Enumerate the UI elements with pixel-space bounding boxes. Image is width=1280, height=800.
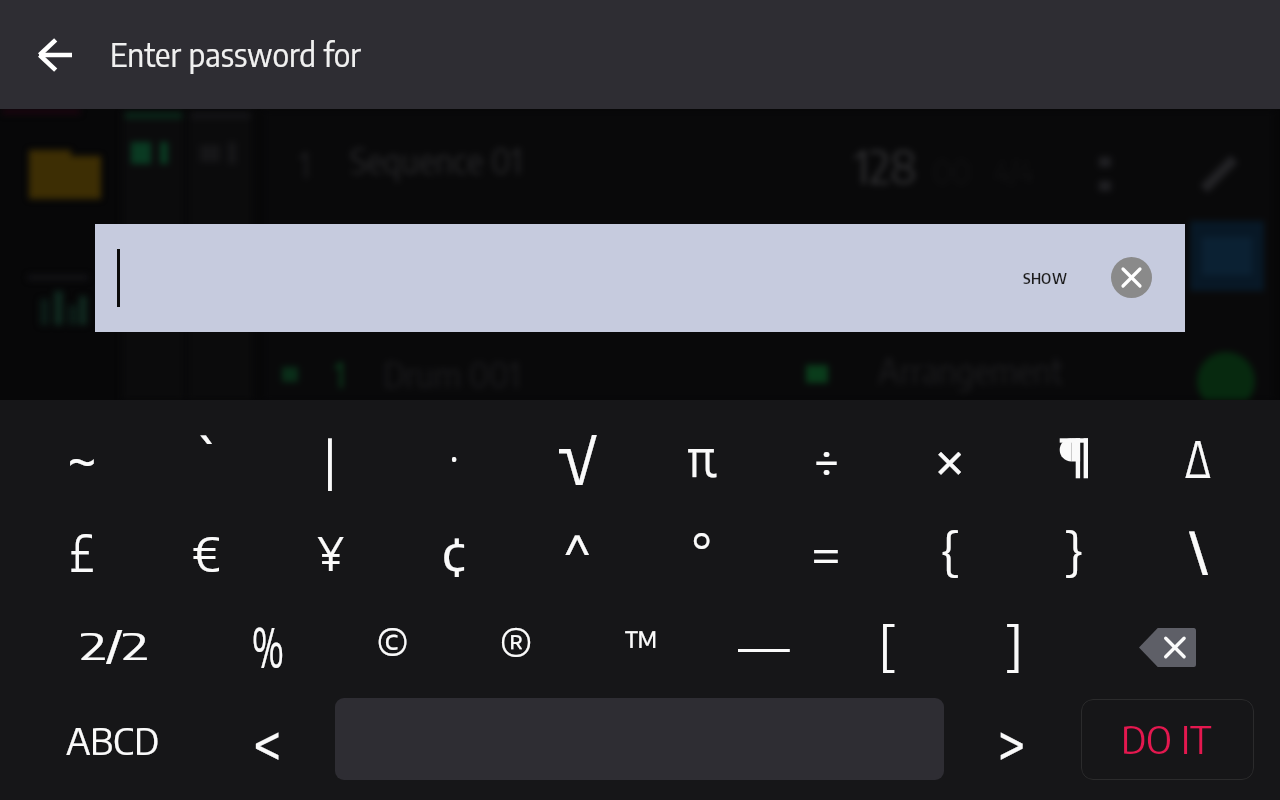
button[interactable] <box>1000 248 1090 308</box>
button[interactable]: key <box>578 601 702 694</box>
button[interactable] <box>1081 699 1254 780</box>
button[interactable]: Previous <box>206 695 330 788</box>
button[interactable]: key <box>702 601 826 694</box>
button[interactable]: Next <box>950 695 1074 788</box>
button[interactable]: key <box>20 414 144 507</box>
button[interactable]: key <box>516 414 640 507</box>
button[interactable]: key <box>1012 507 1136 600</box>
button[interactable]: key <box>268 507 392 600</box>
button[interactable]: Back <box>0 0 110 109</box>
button[interactable]: Backspace <box>1074 601 1260 694</box>
button[interactable]: key <box>392 414 516 507</box>
button[interactable]: key <box>20 507 144 600</box>
button[interactable]: key <box>1012 414 1136 507</box>
button[interactable]: Clear <box>95 224 1185 332</box>
button[interactable]: Clear <box>1111 257 1152 298</box>
staticText: Enter password for <box>110 34 362 74</box>
button[interactable]: key <box>206 601 330 694</box>
button[interactable]: key <box>330 601 454 694</box>
button[interactable]: key <box>1136 507 1260 600</box>
button[interactable]: key <box>454 601 578 694</box>
button[interactable]: key <box>1136 414 1260 507</box>
button[interactable]: key <box>950 601 1074 694</box>
button[interactable]: key <box>144 414 268 507</box>
button[interactable]: key <box>888 507 1012 600</box>
button[interactable]: key <box>268 414 392 507</box>
button[interactable]: key <box>392 507 516 600</box>
button[interactable]: key <box>764 507 888 600</box>
button[interactable]: key <box>640 507 764 600</box>
button[interactable]: key <box>144 507 268 600</box>
button[interactable]: key <box>516 507 640 600</box>
button[interactable]: ABCD <box>20 695 206 788</box>
button[interactable]: key <box>826 601 950 694</box>
button[interactable]: key <box>888 414 1012 507</box>
button[interactable]: 2/2 <box>20 601 206 694</box>
button[interactable]: key <box>640 414 764 507</box>
button[interactable]: key <box>764 414 888 507</box>
